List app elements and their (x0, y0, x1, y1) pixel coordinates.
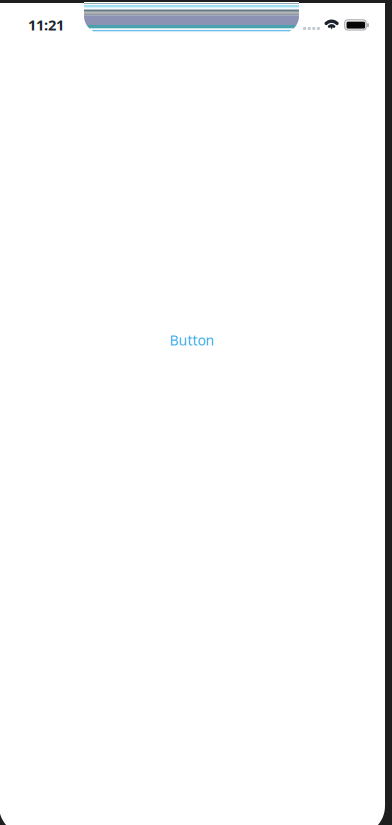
staticText: 11:21 (28, 15, 64, 34)
staticText: Button (169, 331, 214, 349)
button[interactable]: Button (167, 331, 217, 349)
